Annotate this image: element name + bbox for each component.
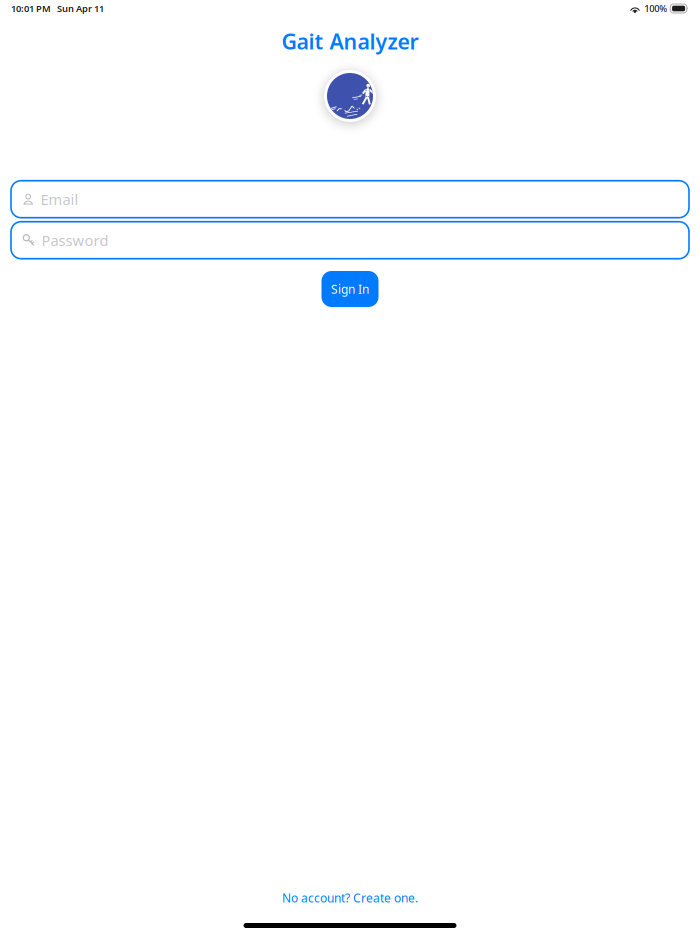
button[interactable]: Sign In bbox=[321, 271, 378, 307]
staticText: Password bbox=[41, 230, 108, 250]
button[interactable]: Email bbox=[11, 181, 689, 218]
staticText: 10:01 PM bbox=[11, 2, 51, 15]
staticText: Sun Apr 11 bbox=[57, 2, 104, 15]
staticText: Sign In bbox=[331, 281, 369, 297]
staticText: 100% bbox=[644, 2, 667, 15]
staticText: Gait Analyzer bbox=[281, 27, 418, 55]
button[interactable]: Password bbox=[11, 222, 689, 259]
staticText: Email bbox=[40, 189, 78, 209]
button[interactable]: No account? Create one. bbox=[272, 885, 428, 911]
staticText: No account? Create one. bbox=[282, 890, 418, 906]
